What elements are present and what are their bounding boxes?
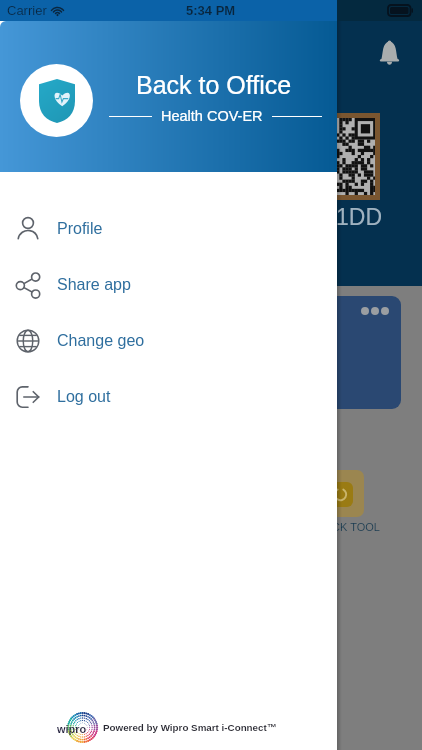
staticText: 1DD <box>336 204 383 230</box>
button[interactable] <box>206 296 401 409</box>
staticText: 5:34 PM <box>186 3 236 18</box>
staticText: Change geo <box>57 332 145 350</box>
staticText: Log out <box>57 388 111 406</box>
button[interactable]: Share app <box>0 257 337 313</box>
button[interactable]: Notifications <box>370 34 408 72</box>
staticText: CK TOOL <box>332 521 380 533</box>
staticText: Health COV-ER <box>161 108 263 124</box>
button[interactable]: Log out <box>0 369 337 425</box>
staticText: wipro <box>57 723 87 735</box>
staticText: Share app <box>57 276 131 294</box>
staticText: Profile <box>57 220 103 238</box>
staticText: Carrier <box>7 3 47 18</box>
button[interactable]: Profile <box>0 201 337 257</box>
button[interactable]: Check tool <box>318 470 364 517</box>
staticText: Powered by Wipro Smart i-Connect™ <box>103 722 277 733</box>
button[interactable]: Change geo <box>0 313 337 369</box>
staticText: Back to Office <box>136 71 292 99</box>
